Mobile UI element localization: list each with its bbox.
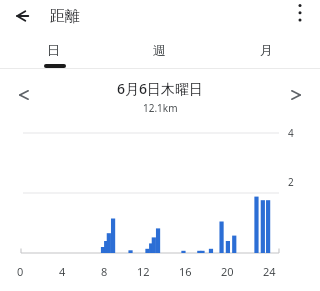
button[interactable]: 月 <box>213 32 320 68</box>
staticText: 月 <box>260 42 273 58</box>
staticText: 12.1km <box>143 101 178 115</box>
staticText: 20 <box>221 264 234 279</box>
staticText: 日 <box>47 42 60 58</box>
button[interactable]: 日 <box>0 32 106 68</box>
staticText: 0 <box>17 264 24 279</box>
button[interactable]: Back <box>8 2 36 30</box>
staticText: 4 <box>59 264 66 279</box>
staticText: 12 <box>137 264 150 279</box>
staticText: 24 <box>263 264 276 279</box>
staticText: 距離 <box>50 7 80 26</box>
staticText: 6月6日木曜日 <box>117 79 204 98</box>
staticText: 4 <box>288 126 294 140</box>
button[interactable]: 週 <box>106 32 213 68</box>
staticText: 8 <box>101 264 108 279</box>
staticText: 2 <box>288 175 294 189</box>
button[interactable]: Previous day <box>8 80 38 110</box>
staticText: 16 <box>179 264 192 279</box>
button[interactable]: Next day <box>282 80 312 110</box>
staticText: 週 <box>153 42 166 58</box>
button[interactable]: More options <box>289 0 311 26</box>
